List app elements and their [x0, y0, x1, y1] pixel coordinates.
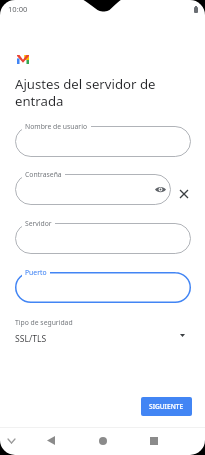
button[interactable]: Puerto [15, 272, 191, 303]
staticText: Puerto [25, 268, 47, 277]
button[interactable]: Tipo de seguridad [15, 315, 185, 347]
staticText: SIGUIENTE [149, 402, 184, 411]
button[interactable]: Aplicaciones recientes [144, 431, 163, 450]
button[interactable]: Cerrar [178, 188, 190, 200]
staticText: Ajustes del servidor de entrada [15, 75, 173, 110]
button[interactable]: Nombre de usuario [15, 126, 191, 157]
button[interactable]: Mostrar contraseña [155, 186, 166, 193]
staticText: 10:00 [8, 4, 28, 14]
button[interactable]: Contraseña [15, 174, 171, 205]
button[interactable]: Ocultar teclado [3, 432, 20, 449]
staticText: Nombre de usuario [25, 122, 88, 131]
button[interactable]: SIGUIENTE [141, 397, 192, 416]
staticText: Tipo de seguridad [15, 318, 73, 327]
button[interactable]: Servidor [15, 223, 191, 254]
button[interactable]: Atrás [41, 431, 60, 450]
staticText: Servidor [25, 219, 52, 228]
staticText: Contraseña [25, 170, 62, 179]
staticText: SSL/TLS [15, 333, 47, 345]
button[interactable]: Inicio [93, 431, 112, 450]
